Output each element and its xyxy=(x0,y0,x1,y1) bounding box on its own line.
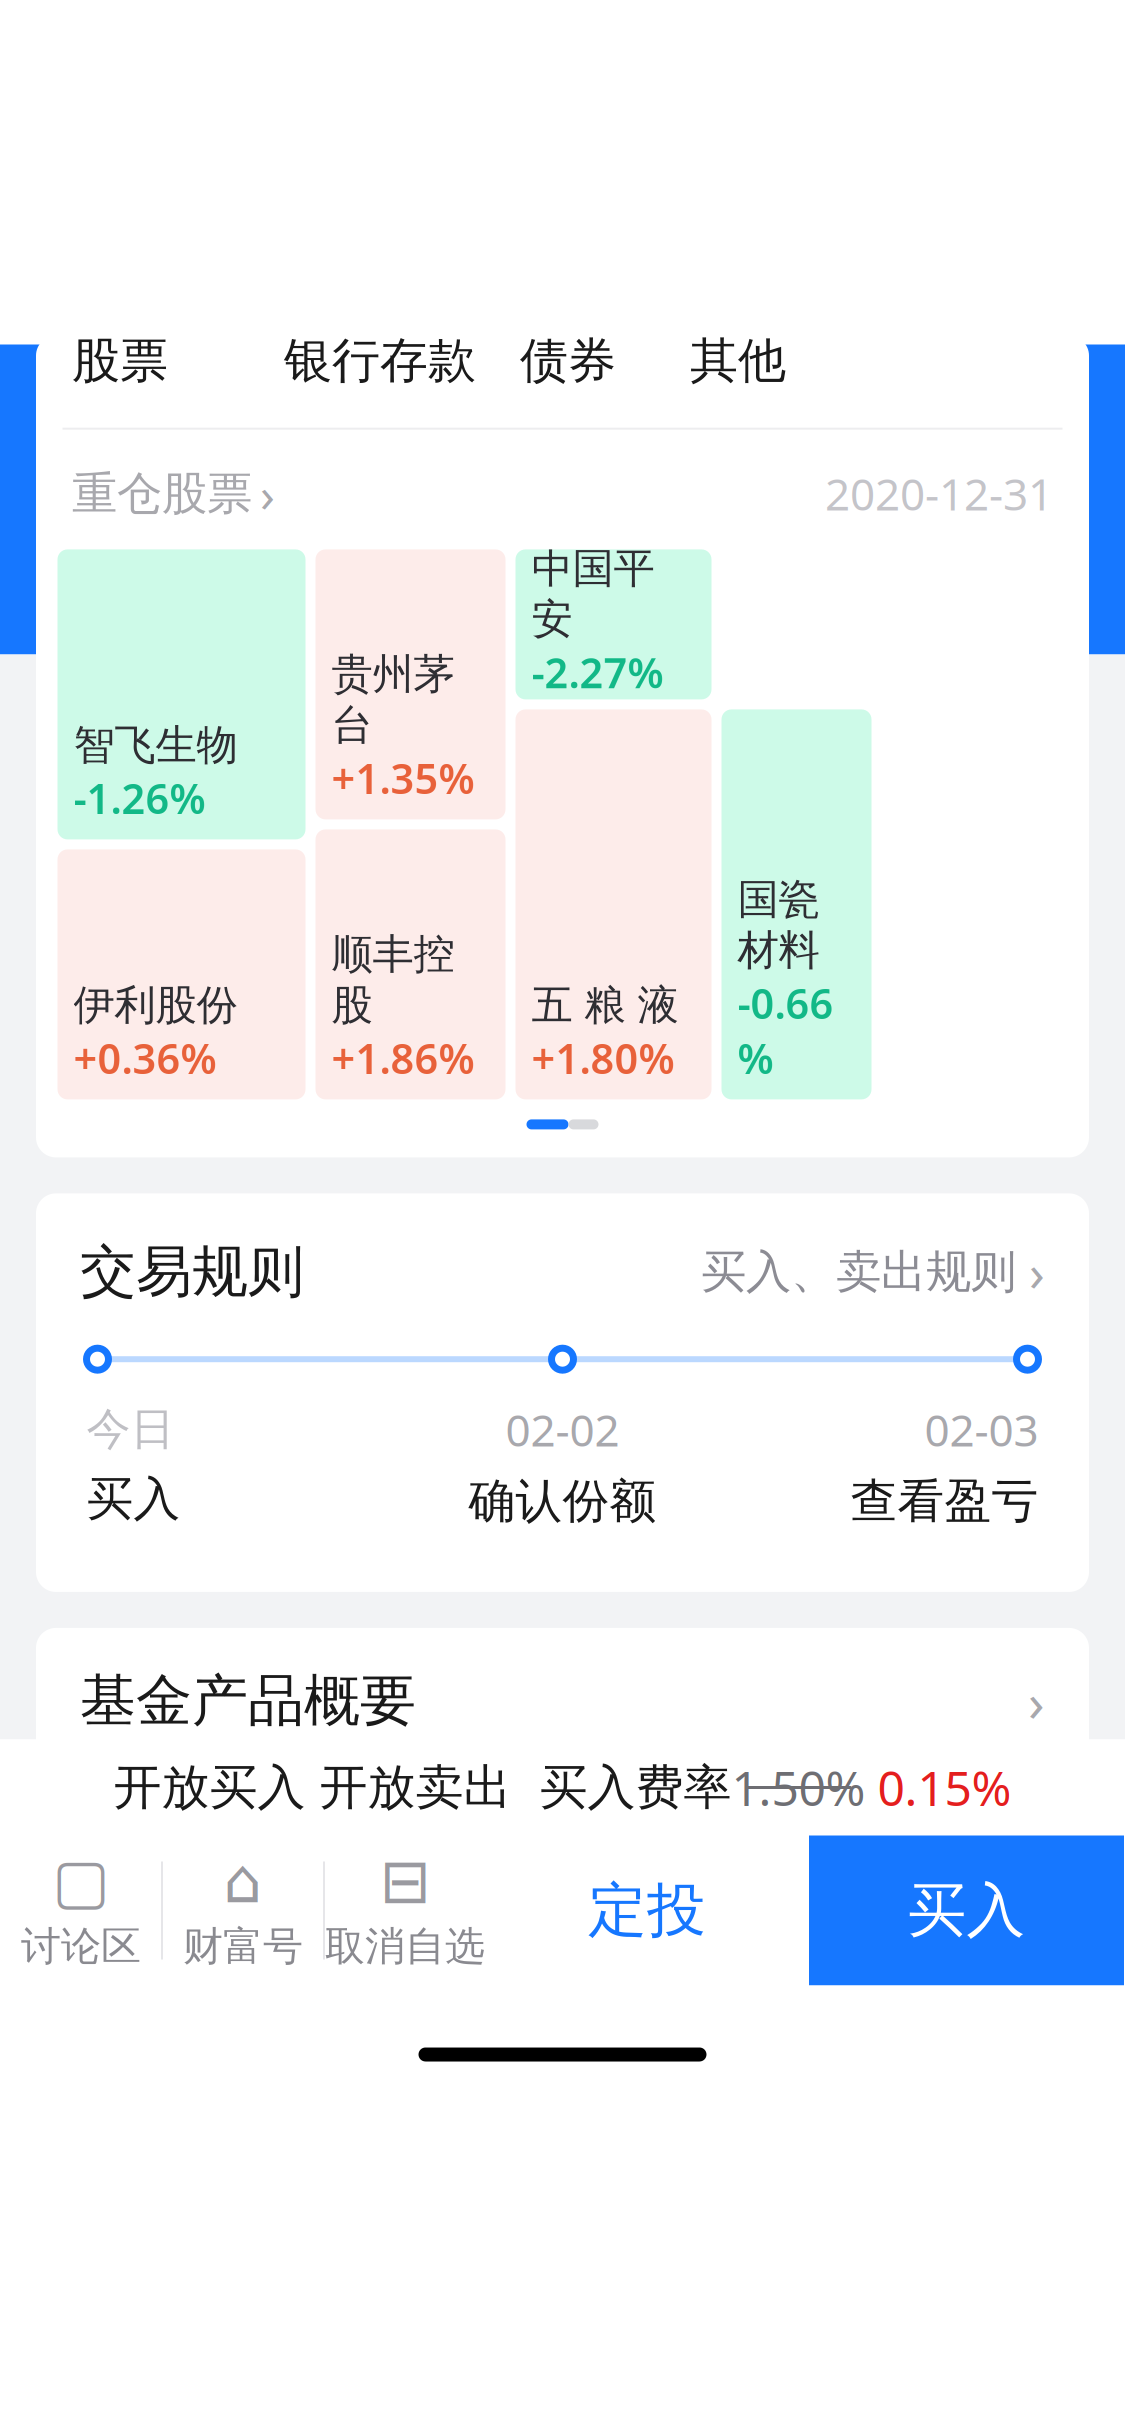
staticText: 五 粮 液 xyxy=(531,980,678,1030)
button[interactable]: 基金产品概要 xyxy=(36,1628,1089,1774)
button[interactable]: 伊利股份 xyxy=(57,849,305,1099)
staticText: › xyxy=(1014,1665,1045,1736)
button[interactable]: 交易规则 xyxy=(36,1193,1089,1344)
staticText: -1.26% xyxy=(73,770,205,825)
staticText: 顺丰控股 xyxy=(331,929,454,1030)
staticText: 基金产品概要 xyxy=(80,1666,416,1735)
staticText: +1.86% xyxy=(331,1030,474,1085)
button[interactable]: 顺丰控股 xyxy=(315,829,505,1099)
staticText: 中国平安 xyxy=(531,543,654,645)
staticText: +0.36% xyxy=(73,1030,216,1085)
staticText: 今日 xyxy=(86,1402,174,1456)
staticText: 伊利股份 xyxy=(73,980,237,1030)
button[interactable]: ⌂ xyxy=(163,1835,323,1985)
staticText: 银行存款 xyxy=(284,331,476,390)
staticText: 讨论区 xyxy=(21,1922,141,1971)
staticText: 02-03 xyxy=(924,1400,1038,1459)
staticText: 交易规则 xyxy=(80,1237,304,1306)
staticText: ⌂ xyxy=(223,1846,262,1916)
staticText: 国瓷材料 xyxy=(737,874,819,976)
staticText: 基金销售服务由蚂蚁（杭州）基金销售有限公司提供 xyxy=(68,1998,1057,2050)
staticText: ▢ xyxy=(52,1846,110,1916)
staticText: 智飞生物 xyxy=(73,720,237,770)
button[interactable]: 五 粮 液 xyxy=(515,709,711,1099)
staticText: -2.27% xyxy=(531,645,663,700)
staticText: 1.50% xyxy=(731,1756,865,1819)
staticText: › xyxy=(260,462,275,525)
staticText: 常见问题 xyxy=(80,1848,304,1917)
staticText: +1.35% xyxy=(331,750,474,805)
staticText: -0.66% xyxy=(737,976,833,1085)
button[interactable]: 贵州茅台 xyxy=(315,549,505,819)
button[interactable]: Share xyxy=(993,439,1103,545)
staticText: 取消自选 xyxy=(325,1922,485,1971)
button[interactable]: ⊟ xyxy=(325,1835,485,1985)
staticText: 业绩表现 xyxy=(342,565,522,620)
staticText: 确认份额 xyxy=(468,1473,656,1530)
button[interactable]: 基本信息 xyxy=(42,548,302,654)
button[interactable]: 买入 xyxy=(809,1835,1124,1985)
staticText: 0.15% xyxy=(865,1756,1011,1819)
staticText: 定投 xyxy=(588,1874,706,1947)
staticText: 买入 xyxy=(907,1874,1025,1947)
staticText: 贵州茅台 xyxy=(331,649,454,750)
button[interactable]: 重仓股票 xyxy=(72,462,275,525)
button[interactable]: 国瓷材料 xyxy=(721,709,871,1099)
button[interactable]: 定投 xyxy=(485,1835,809,1985)
staticText: +1.80% xyxy=(531,1030,674,1085)
button[interactable]: 智飞生物 xyxy=(57,549,305,839)
staticText: 2020-12-31 xyxy=(825,464,1053,523)
staticText: ⊟ xyxy=(379,1846,430,1916)
staticText: 5:18 xyxy=(48,361,135,420)
staticText: › xyxy=(1016,1238,1045,1305)
staticText: 开放买入 开放卖出 买入费率 xyxy=(113,1758,731,1817)
button[interactable]: ▢ xyxy=(1,1835,161,1985)
staticText: ⦙⦙ xyxy=(1034,461,1062,524)
staticText: 重仓股票 xyxy=(72,466,252,521)
staticText: 查看盈亏 xyxy=(850,1473,1038,1530)
button[interactable]: 常见问题 xyxy=(36,1810,1089,1956)
staticText: 股票 xyxy=(72,331,168,390)
button[interactable]: 中国平安 xyxy=(515,549,711,699)
staticText: 基金档案 xyxy=(602,565,782,620)
button[interactable]: Back xyxy=(22,439,132,545)
staticText: 联系客服 xyxy=(822,1853,1014,1912)
staticText: 债券 xyxy=(520,331,616,390)
staticText: 买入 xyxy=(86,1470,180,1528)
staticText: 其他 xyxy=(690,331,786,390)
staticText: 买入、卖出规则 xyxy=(701,1244,1016,1300)
staticText: 财富号 xyxy=(183,1922,303,1971)
staticText: 02-02 xyxy=(505,1400,619,1459)
button[interactable]: 业绩表现 xyxy=(302,548,562,654)
staticText: ‹ xyxy=(65,436,88,549)
button[interactable]: 基金档案 xyxy=(562,548,822,654)
